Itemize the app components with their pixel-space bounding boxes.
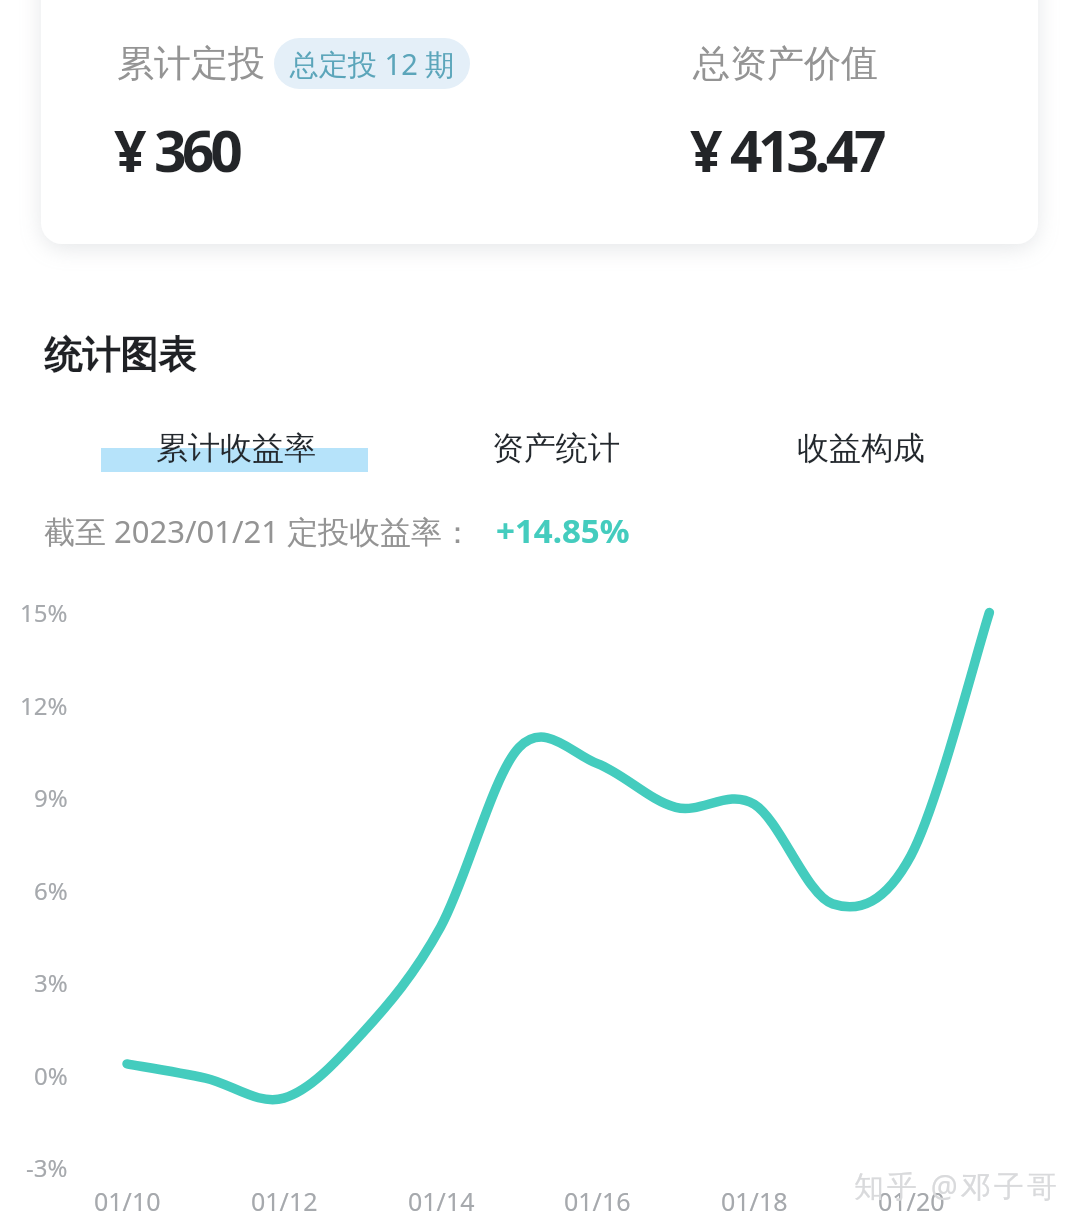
staticText: 0% <box>34 1059 68 1092</box>
staticText: 知乎 @邓子哥 <box>854 1165 1060 1206</box>
staticText: 01/14 <box>408 1184 475 1218</box>
button[interactable]: 累计定投 <box>41 0 541 244</box>
button[interactable]: 收益构成 <box>797 424 925 472</box>
staticText: 累计定投 <box>117 40 265 87</box>
staticText: 统计图表 <box>44 331 196 379</box>
staticText: 截至 2023/01/21 定投收益率： <box>44 510 474 552</box>
staticText: 360 <box>154 111 239 189</box>
button[interactable]: 总资产价值 <box>600 0 1038 244</box>
staticText: 总资产价值 <box>693 40 878 87</box>
staticText: 12% <box>20 689 68 722</box>
staticText: -3% <box>26 1151 68 1184</box>
staticText: ¥ <box>114 111 147 189</box>
button[interactable]: 累计收益率 <box>110 424 362 472</box>
staticText: 01/10 <box>94 1184 161 1218</box>
other: 累计收益率走势图 <box>0 0 1080 1232</box>
staticText: ¥ <box>690 111 723 189</box>
staticText: 资产统计 <box>492 428 620 468</box>
staticText: 3% <box>34 966 68 999</box>
button[interactable]: 资产统计 <box>492 424 620 472</box>
staticText: +14.85% <box>496 508 630 553</box>
staticText: 累计收益率 <box>156 428 316 468</box>
staticText: 收益构成 <box>797 428 925 468</box>
staticText: 01/12 <box>251 1184 318 1218</box>
staticText: 01/18 <box>721 1184 788 1218</box>
staticText: 总定投 12 期 <box>290 44 455 84</box>
staticText: 01/20 <box>878 1184 945 1218</box>
staticText: 15% <box>20 596 68 629</box>
staticText: 9% <box>34 781 68 814</box>
staticText: 01/16 <box>564 1184 631 1218</box>
staticText: 413.47 <box>730 111 883 189</box>
staticText: 6% <box>34 874 68 907</box>
